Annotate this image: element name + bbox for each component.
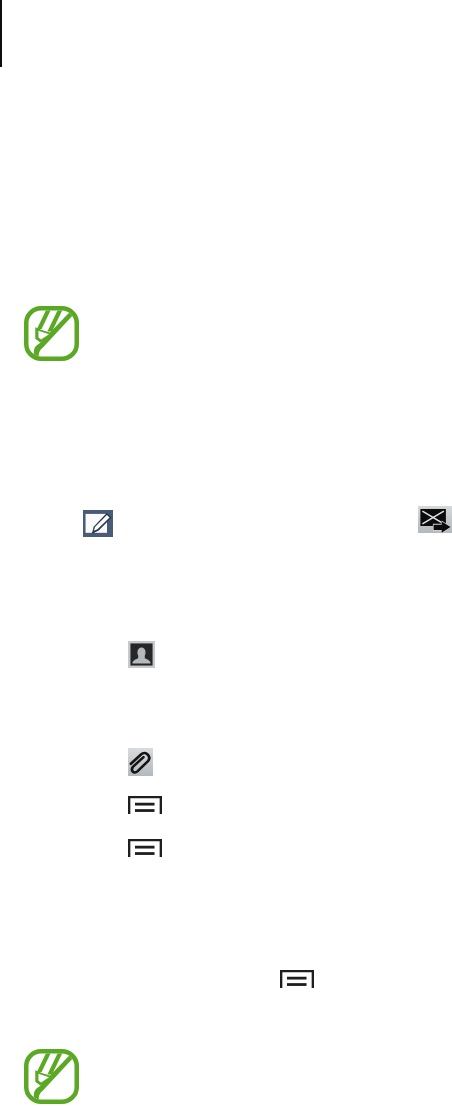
button[interactable]: Send email	[418, 506, 452, 533]
button[interactable]: Compose	[83, 510, 113, 537]
button[interactable]: Memo app	[24, 1049, 79, 1104]
button[interactable]: Attach file	[128, 748, 153, 776]
button[interactable]: Menu	[280, 970, 314, 988]
button[interactable]: Contacts	[128, 641, 155, 668]
button[interactable]: Menu	[128, 839, 162, 857]
button[interactable]: Menu	[128, 796, 162, 814]
button[interactable]: Memo app	[24, 306, 79, 361]
